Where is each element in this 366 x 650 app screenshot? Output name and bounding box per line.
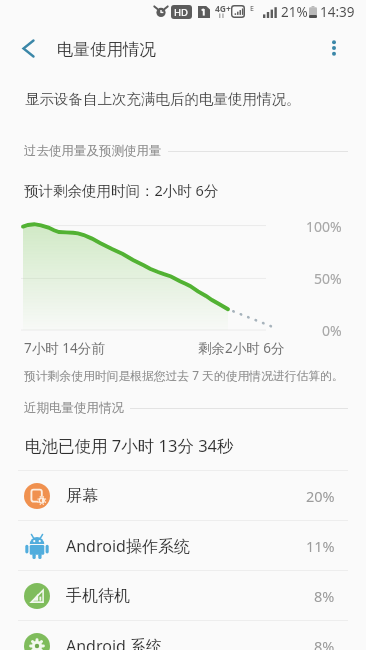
staticText: 电量使用情况 xyxy=(57,39,156,60)
staticText: 预计剩余使用时间是根据您过去 7 天的使用情况进行估算的。 xyxy=(24,367,344,383)
staticText: 屏幕 xyxy=(66,486,98,506)
staticText: E xyxy=(250,4,254,14)
staticText: 预计剩余使用时间：2小时 6分 xyxy=(24,180,219,200)
staticText: 21% xyxy=(281,3,308,21)
button[interactable]: Android操作系统 xyxy=(0,521,366,570)
staticText: 14:39 xyxy=(320,3,355,21)
button[interactable]: 屏幕 xyxy=(0,471,366,520)
staticText: Android 系统 xyxy=(66,635,163,650)
staticText: 4G+ xyxy=(215,3,231,15)
staticText: 手机待机 xyxy=(66,586,130,606)
staticText: HD xyxy=(174,6,189,19)
staticText: 剩余2小时 6分 xyxy=(198,339,285,357)
staticText: 8% xyxy=(314,636,335,650)
staticText: Android操作系统 xyxy=(66,535,190,557)
button[interactable]: Android 系统 xyxy=(0,621,366,650)
staticText: 显示设备自上次充满电后的电量使用情况。 xyxy=(25,90,301,108)
staticText: 100% xyxy=(306,217,342,236)
button[interactable]: More options xyxy=(312,26,356,70)
staticText: 电池已使用 7小时 13分 34秒 xyxy=(25,434,234,457)
staticText: 20% xyxy=(306,486,335,506)
staticText: 8% xyxy=(314,586,335,606)
staticText: 7小时 14分前 xyxy=(24,339,105,357)
staticText: 50% xyxy=(314,269,342,288)
staticText: 11% xyxy=(306,536,335,556)
button[interactable]: Back xyxy=(6,26,50,70)
button[interactable]: 手机待机 xyxy=(0,571,366,620)
staticText: 近期电量使用情况 xyxy=(24,400,124,416)
staticText: 0% xyxy=(322,321,342,340)
staticText: 过去使用量及预测使用量 xyxy=(24,143,162,159)
